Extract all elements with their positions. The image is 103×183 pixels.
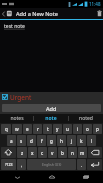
staticText: note (45, 115, 57, 122)
button[interactable]: g (47, 135, 56, 146)
button[interactable]: m (78, 147, 87, 158)
staticText: o (86, 126, 89, 132)
button[interactable]: u (63, 124, 72, 134)
button[interactable]: p (93, 124, 102, 134)
staticText: Add a New Note (16, 10, 58, 17)
button[interactable]: z (17, 147, 27, 158)
staticText: noted (79, 115, 93, 122)
staticText: f (41, 138, 43, 144)
staticText: w (15, 126, 19, 132)
button[interactable]: d (27, 135, 36, 146)
staticText: test note (4, 23, 25, 30)
button[interactable]: , (17, 159, 26, 170)
staticText: q (5, 126, 8, 132)
staticText: a (10, 138, 13, 144)
button[interactable]: Enter (87, 159, 102, 170)
staticText: l (91, 138, 93, 144)
button[interactable]: note (34, 114, 68, 123)
staticText: m (80, 150, 85, 156)
button[interactable]: v (48, 147, 57, 158)
staticText: r (37, 126, 39, 132)
button[interactable]: i (73, 124, 82, 134)
button[interactable]: Delete note (96, 8, 103, 19)
button[interactable]: t (43, 124, 52, 134)
button[interactable]: y (53, 124, 62, 134)
staticText: u (66, 126, 69, 132)
staticText: k (80, 138, 83, 144)
staticText: p (96, 126, 99, 132)
staticText: g (50, 138, 53, 144)
staticText: Add (46, 105, 57, 112)
staticText: y (56, 126, 59, 132)
button[interactable]: notes (0, 114, 33, 123)
button[interactable]: c (38, 147, 47, 158)
button[interactable]: s (17, 135, 26, 146)
staticText: c (41, 150, 44, 156)
staticText: notes (10, 115, 24, 122)
staticText: v (51, 150, 54, 156)
button[interactable]: x (28, 147, 37, 158)
staticText: 11:48 (89, 1, 101, 7)
button[interactable]: j (67, 135, 76, 146)
staticText: n (71, 150, 74, 156)
button[interactable]: e (23, 124, 32, 134)
staticText: i (77, 126, 79, 132)
button[interactable]: Backspace (88, 147, 102, 158)
staticText: b (61, 150, 64, 156)
button[interactable]: q (1, 124, 11, 134)
button[interactable]: w (12, 124, 22, 134)
staticText: j (71, 138, 73, 144)
button[interactable]: Home (35, 171, 69, 183)
button[interactable]: f (37, 135, 46, 146)
staticText: s (20, 138, 23, 144)
button[interactable]: ?123 (1, 159, 16, 170)
button[interactable]: Navigate up (0, 10, 14, 17)
button[interactable]: h (57, 135, 66, 146)
button[interactable]: o (83, 124, 92, 134)
button[interactable]: Shift (1, 147, 16, 158)
staticText: h (60, 138, 63, 144)
staticText: English (US) (42, 162, 62, 167)
button[interactable]: b (58, 147, 67, 158)
button[interactable]: Recent apps (69, 171, 103, 183)
button[interactable]: k (77, 135, 86, 146)
staticText: ?123 (5, 162, 13, 167)
staticText: d (30, 138, 33, 144)
button[interactable]: Back (0, 171, 35, 183)
button[interactable]: . (77, 159, 86, 170)
button[interactable]: Urgent (0, 92, 103, 102)
button[interactable]: r (33, 124, 42, 134)
staticText: z (21, 150, 24, 156)
button[interactable]: noted (69, 114, 103, 123)
button[interactable]: a (7, 135, 16, 146)
staticText: Urgent (10, 93, 32, 102)
button[interactable]: l (87, 135, 96, 146)
staticText: e (26, 126, 29, 132)
staticText: , (21, 162, 23, 168)
button[interactable]: English (US) (27, 159, 76, 170)
button[interactable]: n (68, 147, 77, 158)
staticText: . (81, 162, 83, 168)
button[interactable]: Add (2, 104, 101, 112)
staticText: x (31, 150, 34, 156)
staticText: t (47, 126, 49, 132)
